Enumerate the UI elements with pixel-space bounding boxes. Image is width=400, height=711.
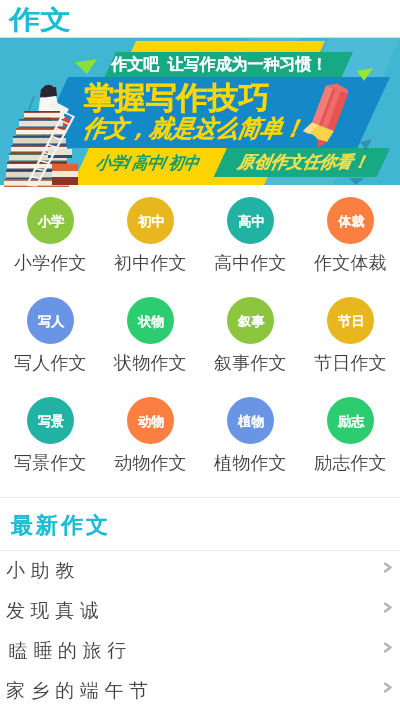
staticText: 掌握写作技巧 [83,79,269,118]
button[interactable]: 发现真诚 [0,591,400,631]
staticText: 发现真诚 [6,599,105,623]
staticText: 体裁 [338,213,364,229]
staticText: 叙事作文 [214,352,287,375]
button[interactable]: 小助教 [0,551,400,591]
other: 打开 [381,641,394,654]
button[interactable]: 状物 [100,297,200,397]
staticText: 小学 [38,213,64,229]
staticText: 写景作文 [14,452,87,475]
other: 打开 [381,681,394,694]
staticText: 家乡的端午节 [6,679,154,703]
staticText: 作文吧 让写作成为一种习惯！ [111,53,328,75]
staticText: 动物 [138,413,164,429]
other: 打开 [381,561,394,574]
staticText: 瞌睡的旅行 [6,639,129,663]
staticText: 小助教 [6,559,80,583]
staticText: 作文体裁 [314,252,387,275]
staticText: 小学/高中/初中 [95,151,198,174]
staticText: 节日 [338,313,364,329]
staticText: 植物 [238,413,264,429]
button[interactable]: 初中 [100,197,200,297]
staticText: 动物作文 [114,452,187,475]
button[interactable]: 小学 [0,197,100,297]
staticText: 写景 [38,413,64,429]
other: 打开 [381,601,394,614]
button[interactable]: 写景 [0,397,100,497]
button[interactable]: 节日 [300,297,400,397]
staticText: 小学作文 [14,252,87,275]
button[interactable]: 高中 [200,197,300,297]
staticText: 叙事 [238,313,264,329]
staticText: 励志作文 [314,452,387,475]
button[interactable]: 动物 [100,397,200,497]
staticText: 作文 [9,4,70,37]
staticText: 高中作文 [214,252,287,275]
staticText: 状物作文 [114,352,187,375]
staticText: 原创作文任你看！ [237,152,368,173]
button[interactable]: 励志 [300,397,400,497]
button[interactable]: 瞌睡的旅行 [0,631,400,671]
staticText: 最新作文 [9,512,109,540]
staticText: 节日作文 [314,352,387,375]
button[interactable]: 家乡的端午节 [0,671,400,711]
staticText: 初中 [138,213,164,229]
button[interactable]: 体裁 [300,197,400,297]
button[interactable]: 植物 [200,397,300,497]
button[interactable]: 写人 [0,297,100,397]
button[interactable]: 作文吧 让写作成为一种习惯！ [0,38,400,185]
staticText: 初中作文 [114,252,187,275]
staticText: 写人 [38,313,64,329]
button[interactable]: 叙事 [200,297,300,397]
staticText: 作文，就是这么简单！ [82,114,303,144]
staticText: 状物 [138,313,164,329]
staticText: 励志 [338,413,364,429]
staticText: 高中 [238,213,264,229]
staticText: 写人作文 [14,352,87,375]
staticText: 植物作文 [214,452,287,475]
